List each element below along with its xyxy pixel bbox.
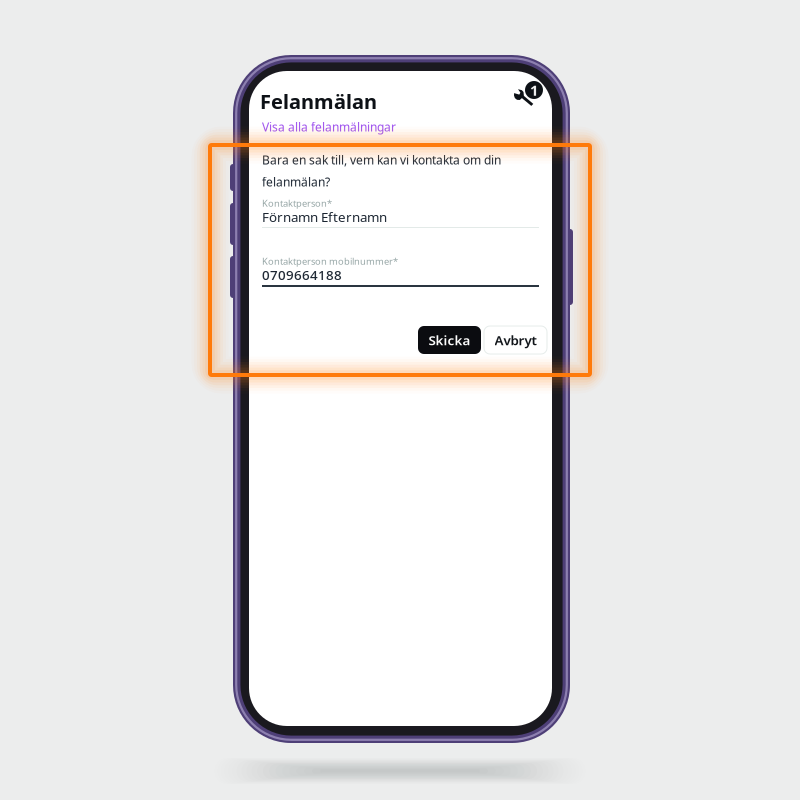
- button[interactable]: Felanmälningar, 1 ny: [513, 80, 547, 112]
- button[interactable]: Visa alla felanmälningar: [262, 119, 396, 135]
- staticText: 0709664188: [262, 266, 342, 284]
- staticText: Kontaktperson mobilnummer*: [262, 255, 398, 267]
- button[interactable]: Skicka: [418, 326, 481, 354]
- staticText: Visa alla felanmälningar: [262, 119, 396, 135]
- staticText: Skicka: [428, 331, 470, 349]
- staticText: Felanmälan: [260, 88, 377, 115]
- staticText: Bara en sak till, vem kan vi kontakta om…: [262, 152, 501, 190]
- button[interactable]: Avbryt: [484, 326, 547, 354]
- staticText: 1: [530, 80, 538, 100]
- staticText: Kontaktperson*: [262, 197, 332, 209]
- staticText: Avbryt: [494, 331, 536, 349]
- staticText: Förnamn Efternamn: [262, 208, 387, 226]
